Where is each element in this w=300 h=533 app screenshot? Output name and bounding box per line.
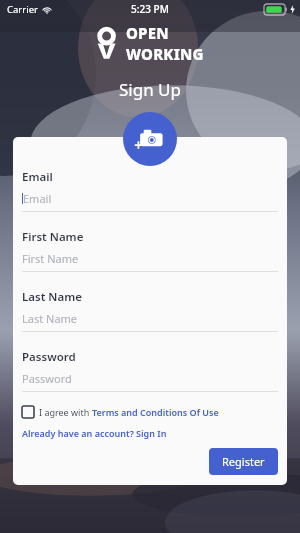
staticText: First Name [22,251,79,266]
staticText: Password [22,371,72,386]
staticText: Email [22,169,53,185]
staticText: Register [222,454,265,469]
button[interactable]: Add profile photo [123,112,177,166]
button[interactable]: Password [22,349,278,392]
button[interactable]: I agree with [22,406,219,418]
button[interactable]: Already have an account? Sign In [22,427,167,439]
staticText: Sign Up [0,78,300,101]
button[interactable]: Email [22,169,278,212]
staticText: Password [22,349,76,365]
staticText: WORKING [126,44,204,64]
button[interactable]: Register [209,448,278,475]
staticText: First Name [22,229,84,245]
staticText: OPEN [126,23,169,43]
button[interactable]: Last Name [22,289,278,332]
staticText: Carrier [7,3,38,16]
staticText: Last Name [22,289,82,305]
staticText: I agree with [39,406,92,418]
staticText: 5:23 PM [131,2,169,16]
button[interactable]: First Name [22,229,278,272]
staticText: Terms and Conditions Of Use [92,406,219,418]
staticText: Email [23,191,52,206]
staticText: Last Name [22,311,78,326]
